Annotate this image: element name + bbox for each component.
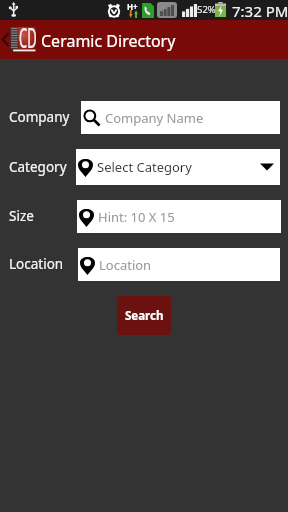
staticText: Search — [125, 308, 164, 324]
staticText: Company Name — [105, 109, 204, 127]
staticText: Company — [9, 108, 70, 126]
button[interactable]: Search — [117, 296, 171, 335]
staticText: 52% — [197, 3, 216, 16]
button[interactable]: Hint: 10 X 15 — [77, 200, 281, 233]
staticText: Category — [9, 158, 67, 176]
other: USB connected — [9, 2, 18, 17]
button[interactable]: Select Category — [76, 149, 280, 185]
staticText: Hint: 10 X 15 — [98, 208, 175, 226]
staticText: Location — [99, 256, 152, 274]
staticText: Select Category — [97, 158, 192, 176]
staticText: Location — [9, 255, 64, 273]
button[interactable]: Location — [78, 248, 280, 281]
button[interactable]: Company Name — [81, 101, 280, 134]
staticText: Size — [9, 207, 34, 225]
staticText: H+ — [127, 1, 138, 12]
other: Back — [2, 33, 9, 46]
staticText: Ceramic Directory — [41, 30, 176, 52]
staticText: CD — [19, 19, 37, 56]
staticText: 7:32 PM — [232, 1, 288, 21]
